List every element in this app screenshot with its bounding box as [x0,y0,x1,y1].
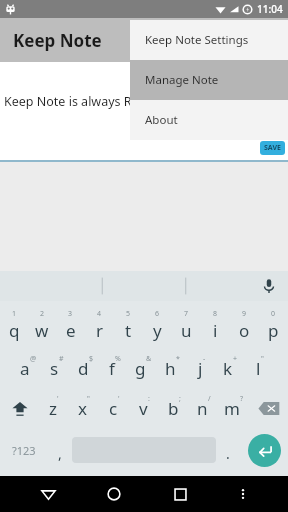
button[interactable]: 4 [85,306,114,348]
button[interactable]: More options [228,479,258,509]
staticText: ; [179,394,181,404]
staticText: r [96,319,104,342]
button[interactable]: Back [30,476,66,512]
button[interactable]: 9 [230,306,259,348]
button[interactable]: x [69,388,99,428]
staticText: i [213,319,218,342]
button[interactable]: g [129,348,158,388]
button[interactable]: j [187,348,216,388]
button[interactable]: n [189,388,219,428]
button[interactable]: 7 [172,306,201,348]
staticText: w [35,319,49,342]
staticText: a [20,357,30,380]
staticText: ? [240,394,244,404]
button[interactable]: l [245,348,274,388]
staticText: % [115,354,121,364]
staticText: f [109,357,115,380]
staticText: z [49,397,57,420]
staticText: u [181,319,192,342]
staticText: + [233,354,238,364]
button[interactable]: Enter [240,428,288,472]
staticText: ' [118,394,120,404]
staticText: 1 [12,309,17,319]
staticText: 9 [242,309,247,319]
staticText: g [135,357,146,380]
button[interactable]: 6 [143,306,172,348]
staticText: 3 [68,309,73,319]
button[interactable]: v [129,388,159,428]
staticText: x [78,397,87,420]
staticText: : [148,394,150,404]
staticText: o [239,319,250,342]
staticText: q [9,319,20,342]
staticText: @ [30,354,37,364]
staticText: Keep Note [13,29,102,52]
staticText: 11:04 [257,2,283,16]
button[interactable]: ?123 [0,428,48,472]
staticText: h [165,357,176,380]
staticText: Manage Note [145,72,219,88]
button[interactable]: Manage Note [130,60,288,100]
button[interactable]: k [216,348,245,388]
button[interactable]: Backspace [249,388,288,428]
button[interactable]: , [48,428,72,472]
button[interactable]: Home [96,476,132,512]
button[interactable]: Shift [0,388,39,428]
staticText: 8 [213,309,218,319]
staticText: 5 [126,309,131,319]
button[interactable]: b [159,388,189,428]
staticText: " [261,354,264,364]
button[interactable]: f [100,348,129,388]
staticText: b [168,397,179,420]
staticText: $ [89,354,94,364]
button[interactable]: m [219,388,249,428]
staticText: 0 [271,309,276,319]
button[interactable]: SAVE [260,141,285,155]
button[interactable]: 0 [259,306,288,348]
button[interactable]: s [42,348,71,388]
staticText: c [109,397,118,420]
staticText: t [125,319,132,342]
button[interactable]: . [216,428,240,472]
button[interactable]: 5 [114,306,143,348]
staticText: , [58,444,62,463]
staticText: d [78,357,89,380]
staticText: n [197,397,208,420]
button[interactable]: d [71,348,100,388]
staticText: v [139,397,148,420]
staticText: " [87,394,90,404]
staticText: y [153,319,162,342]
button[interactable]: a [14,348,42,388]
staticText: j [198,357,203,380]
staticText: - [203,354,206,364]
button[interactable]: 2 [28,306,56,348]
staticText: . [226,444,230,463]
staticText: m [224,397,240,420]
button[interactable]: c [99,388,129,428]
button[interactable]: z [39,388,69,428]
button[interactable]: 3 [56,306,85,348]
button[interactable]: Voice input [259,276,279,296]
staticText: e [66,319,76,342]
staticText: / [208,394,211,404]
staticText: 6 [155,309,160,319]
button[interactable]: About [130,100,288,140]
button[interactable]: 1 [0,306,28,348]
staticText: Keep Note is always Ready [4,93,160,110]
staticText: k [223,357,233,380]
staticText: s [50,357,59,380]
button[interactable]: Recents [162,476,198,512]
staticText: & [146,354,152,364]
staticText: 7 [184,309,189,319]
button[interactable]: h [158,348,187,388]
staticText: 4 [97,309,102,319]
staticText: p [268,319,279,342]
staticText: Keep Note Settings [145,32,249,48]
staticText: * [176,354,180,364]
staticText: 2 [40,309,45,319]
button[interactable]: Keep Note Settings [130,20,288,60]
staticText: l [256,357,261,380]
button[interactable]: 8 [201,306,230,348]
staticText: SAVE [264,143,281,153]
